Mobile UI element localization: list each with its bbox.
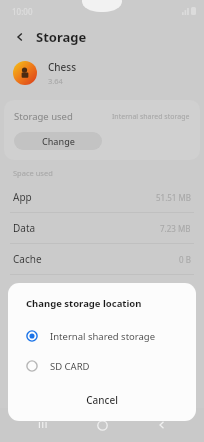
button[interactable]: Cache: [0, 244, 204, 274]
staticText: Change storage location: [26, 297, 142, 310]
staticText: Total: [13, 283, 36, 297]
staticText: Storage used: [14, 110, 73, 123]
staticText: 10:00: [12, 6, 33, 17]
staticText: 7.23 MB: [160, 223, 191, 234]
button[interactable]: SD CARD: [8, 351, 196, 381]
button[interactable]: Data: [0, 213, 204, 243]
button[interactable]: Cancel: [8, 387, 196, 413]
staticText: App: [13, 190, 32, 204]
staticText: Storage: [36, 28, 87, 46]
button[interactable]: Recents: [26, 408, 60, 442]
button[interactable]: Change: [14, 132, 102, 150]
staticText: Cancel: [86, 393, 118, 407]
button[interactable]: Home: [85, 408, 119, 442]
staticText: 3.64: [48, 76, 63, 86]
staticText: Cache: [13, 252, 42, 266]
button[interactable]: Chess: [0, 52, 204, 94]
staticText: Space used: [13, 168, 53, 178]
button[interactable]: Internal shared storage: [8, 321, 196, 351]
staticText: 51.51 MB: [156, 192, 191, 203]
staticText: 0 B: [179, 254, 191, 265]
staticText: SD CARD: [50, 360, 90, 373]
staticText: Internal shared storage: [112, 112, 190, 122]
staticText: Data: [13, 221, 36, 235]
button[interactable]: Back: [10, 27, 30, 47]
button[interactable]: Total: [0, 275, 204, 305]
staticText: Chess: [48, 60, 77, 74]
staticText: Internal shared storage: [50, 330, 156, 343]
button[interactable]: App: [0, 182, 204, 212]
button[interactable]: Back: [145, 408, 179, 442]
staticText: Change: [42, 135, 75, 147]
